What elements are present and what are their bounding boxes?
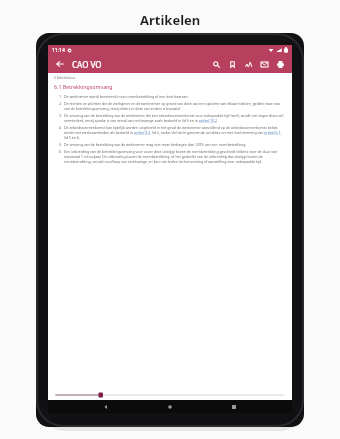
button[interactable]: Bookmark xyxy=(226,58,239,71)
staticText: 4. xyxy=(59,125,64,130)
staticText: 11:14 xyxy=(52,47,65,54)
button[interactable]: Back xyxy=(100,401,111,412)
staticText: 6 Arbeidsduur xyxy=(54,76,76,80)
staticText: 1. xyxy=(59,94,64,99)
button[interactable]: Text size xyxy=(242,58,255,71)
staticText: De omvang van de betrekking van de werkn… xyxy=(64,142,286,147)
button[interactable]: Share xyxy=(258,58,271,71)
staticText: 6.1 Betrekkingsomvang xyxy=(54,83,113,90)
staticText: De werknemer wordt benoemd in een normbe… xyxy=(64,94,286,99)
staticText: CAO VO xyxy=(72,59,102,70)
staticText: De arbeidsovereenkomst kan tijdelijk wor… xyxy=(64,125,286,140)
staticText: 3. xyxy=(59,113,64,118)
staticText: Artikelen xyxy=(140,11,201,29)
button[interactable]: Recent apps xyxy=(228,401,239,412)
button[interactable]: Back xyxy=(53,57,67,71)
staticText: De omvang van de betrekking van de werkn… xyxy=(64,113,286,123)
staticText: 6. xyxy=(59,149,64,154)
staticText: De rechten en plichten die de werkgever … xyxy=(64,101,286,111)
button[interactable]: Progress xyxy=(56,390,284,400)
staticText: 2. xyxy=(59,101,64,106)
button[interactable]: Search xyxy=(210,58,223,71)
staticText: Een uitbreiding van de betrekkingsomvang… xyxy=(64,149,286,164)
button[interactable]: Home xyxy=(164,401,175,412)
button[interactable]: Print xyxy=(274,58,287,71)
staticText: 5. xyxy=(59,142,64,147)
